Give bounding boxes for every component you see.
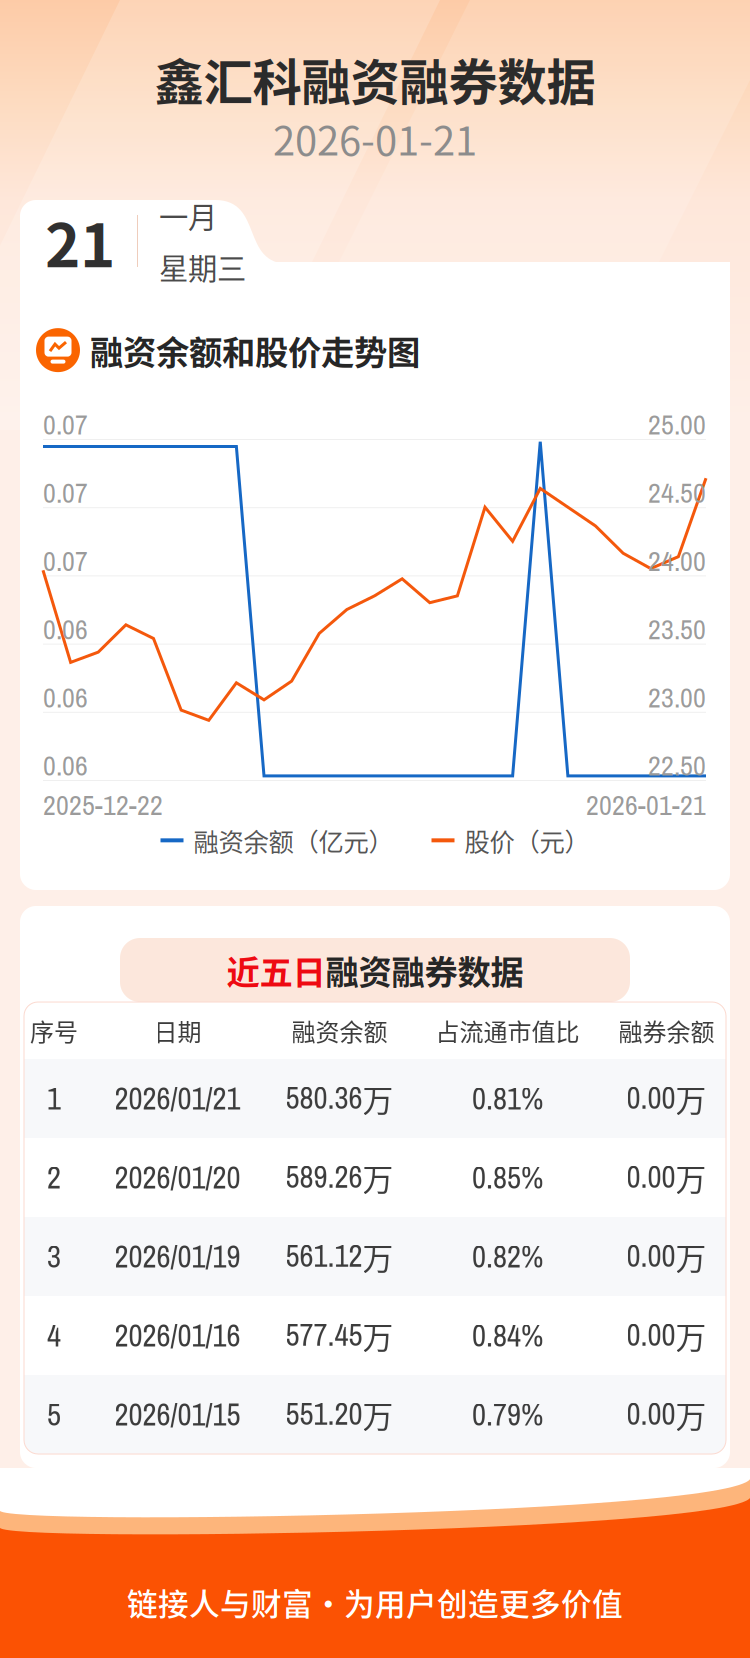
staticText: 4: [47, 1315, 61, 1356]
staticText: 2026/01/15: [114, 1394, 240, 1435]
staticText: 0.00万: [626, 1392, 706, 1437]
staticText: 0.81%: [472, 1078, 543, 1119]
staticText: 融资余额: [291, 1013, 387, 1048]
staticText: 融券余额: [618, 1013, 714, 1048]
staticText: 3: [47, 1236, 61, 1277]
staticText: 2026/01/19: [114, 1236, 240, 1277]
staticText: 0.00万: [626, 1313, 706, 1358]
staticText: 24.50: [648, 474, 706, 511]
staticText: 2026-01-21: [273, 109, 477, 167]
staticText: 577.45万: [285, 1313, 393, 1358]
staticText: 551.20万: [285, 1392, 393, 1437]
staticText: 0.82%: [472, 1236, 543, 1277]
staticText: 0.06: [43, 610, 88, 648]
staticText: 24.00: [648, 542, 706, 580]
staticText: 5: [47, 1394, 61, 1435]
staticText: 序号: [30, 1013, 78, 1048]
staticText: 日期: [153, 1013, 201, 1048]
staticText: 一月: [159, 194, 217, 236]
staticText: 近五日: [226, 946, 325, 994]
staticText: 580.36万: [285, 1076, 393, 1121]
staticText: 589.26万: [285, 1155, 393, 1200]
staticText: 25.00: [648, 406, 706, 443]
staticText: 占流通市值比: [435, 1013, 579, 1048]
staticText: 0.07: [43, 474, 88, 511]
staticText: 0.07: [43, 542, 88, 580]
staticText: 融资余额（亿元）: [193, 822, 393, 859]
staticText: 22.50: [648, 747, 706, 784]
staticText: 561.12万: [285, 1234, 393, 1279]
staticText: 0.06: [43, 678, 88, 716]
staticText: 2026-01-21: [586, 786, 706, 824]
staticText: 2026/01/16: [114, 1315, 240, 1356]
staticText: 0.00万: [626, 1155, 706, 1200]
staticText: 2: [47, 1157, 61, 1198]
staticText: 0.84%: [472, 1315, 543, 1356]
staticText: 0.79%: [472, 1394, 543, 1435]
staticText: 0.06: [43, 747, 88, 784]
staticText: 星期三: [159, 245, 246, 288]
staticText: 2025-12-22: [43, 786, 163, 824]
staticText: 21: [45, 197, 115, 284]
staticText: 0.85%: [472, 1157, 543, 1198]
staticText: 2026/01/20: [114, 1157, 240, 1198]
staticText: 0.00万: [626, 1076, 706, 1121]
staticText: 融资融券数据: [325, 946, 523, 994]
staticText: 23.00: [648, 678, 706, 716]
staticText: 0.00万: [626, 1234, 706, 1279]
staticText: 2026/01/21: [114, 1078, 240, 1119]
staticText: 股价（元）: [464, 822, 589, 859]
staticText: 0.07: [43, 406, 88, 443]
staticText: 23.50: [648, 610, 706, 648]
staticText: 鑫汇科融资融券数据: [154, 43, 595, 114]
staticText: 1: [47, 1078, 61, 1119]
staticText: 融资余额和股价走势图: [90, 326, 420, 374]
staticText: 链接人与财富·为用户创造更多价值: [127, 1580, 623, 1624]
